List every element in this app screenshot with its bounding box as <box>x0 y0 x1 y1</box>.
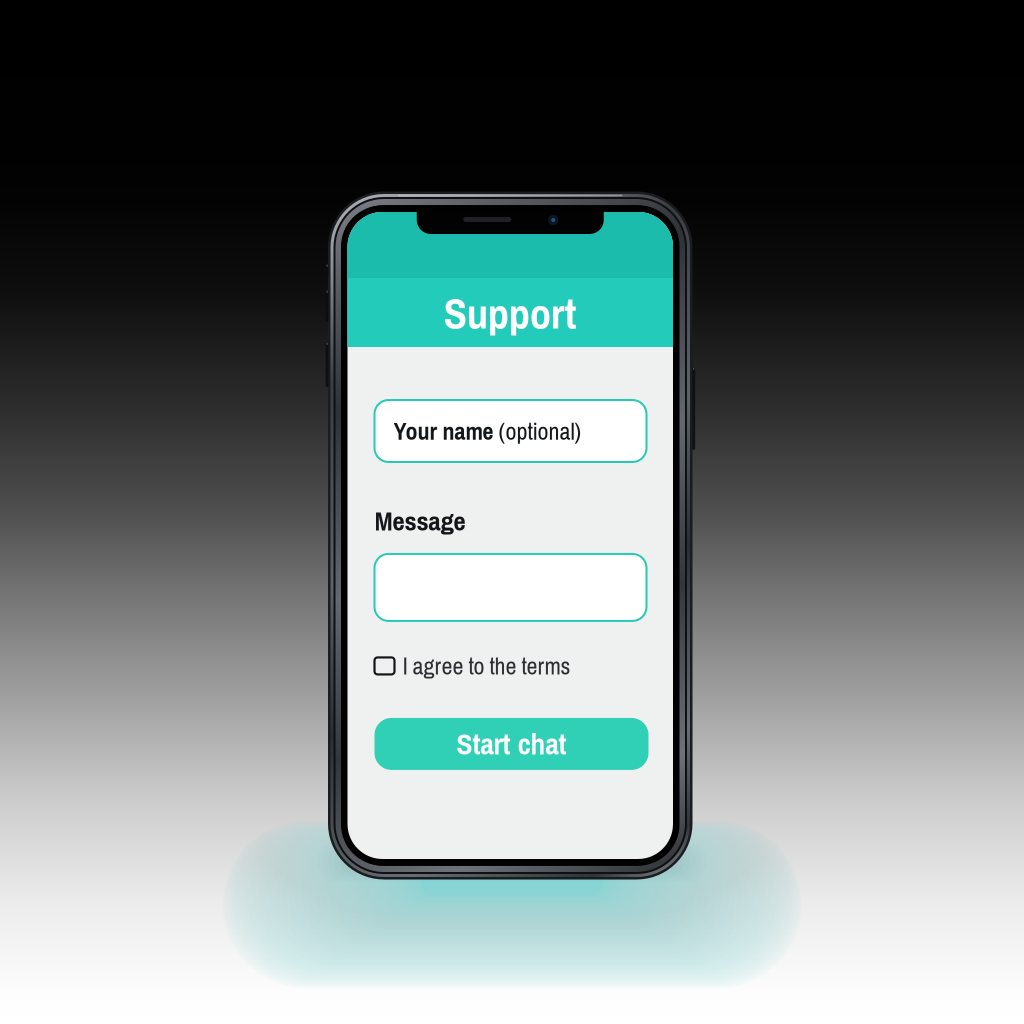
button[interactable]: Your name (optional) <box>374 400 646 462</box>
button[interactable]: I agree to the terms <box>374 655 646 677</box>
staticText: Start chat <box>456 724 566 764</box>
button[interactable]: Start chat <box>374 718 648 770</box>
staticText: Message <box>374 503 465 539</box>
button[interactable]: Message <box>374 554 646 621</box>
staticText: Your name (optional) <box>393 415 581 447</box>
staticText: Support <box>444 284 577 342</box>
button[interactable]: Support <box>347 290 673 336</box>
staticText: I agree to the terms <box>402 650 570 682</box>
